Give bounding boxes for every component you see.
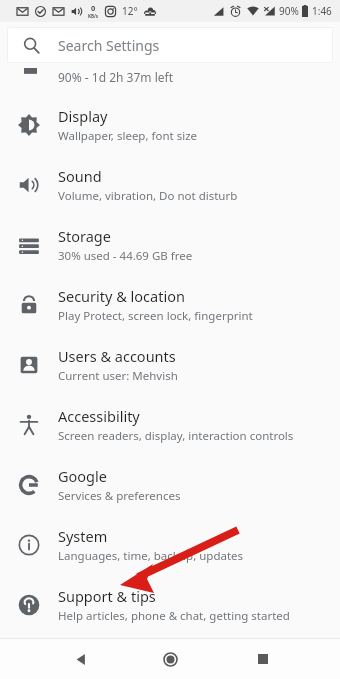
button[interactable]: Accessibility	[0, 395, 340, 455]
staticText: Play Protect, screen lock, fingerprint	[58, 308, 253, 324]
staticText: Users & accounts	[58, 346, 176, 366]
staticText: Current user: Mehvish	[58, 368, 178, 384]
staticText: Help articles, phone & chat, getting sta…	[58, 608, 290, 624]
staticText: Display	[58, 106, 108, 126]
staticText: 30% used - 44.69 GB free	[58, 248, 193, 264]
staticText: Search Settings	[58, 36, 160, 55]
button[interactable]: Support & tips	[0, 575, 340, 635]
button[interactable]: Back	[56, 639, 104, 679]
button[interactable]: Users & accounts	[0, 335, 340, 395]
staticText: Screen readers, display, interaction con…	[58, 428, 294, 444]
button[interactable]: Storage	[0, 215, 340, 275]
staticText: 90%	[279, 4, 299, 18]
staticText: Storage	[58, 226, 111, 246]
staticText: KB/s	[88, 13, 99, 19]
button[interactable]: System	[0, 515, 340, 575]
button[interactable]: Google	[0, 455, 340, 515]
button[interactable]: Security & location	[0, 275, 340, 335]
staticText: Services & preferences	[58, 488, 181, 504]
staticText: Security & location	[58, 286, 185, 306]
staticText: Google	[58, 466, 107, 486]
staticText: 1:46	[312, 4, 332, 18]
staticText: 90% - 1d 2h 37m left	[58, 69, 173, 85]
staticText: System	[58, 526, 108, 546]
staticText: Languages, time, backup, updates	[58, 548, 244, 564]
staticText: Accessibility	[58, 406, 140, 426]
button[interactable]: Home	[146, 639, 194, 679]
staticText: 12°	[122, 4, 138, 18]
button[interactable]: Recent apps	[239, 639, 287, 679]
button[interactable]: Display	[0, 95, 340, 155]
staticText: Support & tips	[58, 586, 156, 606]
staticText: Sound	[58, 166, 102, 186]
staticText: Wallpaper, sleep, font size	[58, 128, 198, 144]
button[interactable]: 90% - 1d 2h 37m left	[0, 68, 340, 95]
button[interactable]: Search Settings	[7, 27, 333, 63]
staticText: 0	[91, 3, 96, 13]
button[interactable]: Sound	[0, 155, 340, 215]
staticText: Volume, vibration, Do not disturb	[58, 188, 238, 204]
